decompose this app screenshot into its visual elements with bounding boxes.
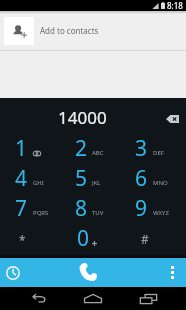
button[interactable]: Dial [26, 258, 158, 287]
button[interactable]: # [124, 223, 186, 253]
button[interactable]: 6 [124, 163, 186, 193]
button[interactable]: 1 [0, 133, 62, 163]
staticText: 14000 [58, 106, 107, 129]
staticText: WXYZ [153, 209, 169, 217]
staticText: GHI [33, 179, 44, 187]
staticText: 1 [15, 134, 28, 163]
button[interactable]: Add to contacts [0, 11, 186, 50]
button[interactable]: 3 [124, 133, 186, 163]
staticText: PQRS [33, 209, 49, 217]
staticText: 2 [75, 134, 88, 163]
staticText: 7 [15, 194, 28, 223]
staticText: 4 [15, 164, 28, 193]
staticText: 8 [75, 194, 88, 223]
button[interactable]: 7 [0, 193, 62, 223]
button[interactable]: * [0, 223, 62, 253]
button[interactable]: 9 [124, 193, 186, 223]
button[interactable]: Home [62, 287, 124, 310]
staticText: * [19, 232, 26, 248]
staticText: ABC [92, 149, 104, 157]
staticText: 5 [75, 164, 88, 193]
staticText: DEF [153, 149, 164, 157]
button[interactable]: 0 [62, 223, 124, 253]
staticText: 3 [135, 134, 148, 163]
staticText: JKL [92, 179, 101, 187]
button[interactable]: 8 [62, 193, 124, 223]
staticText: 6 [135, 164, 148, 193]
button[interactable]: Back [0, 287, 62, 310]
staticText: MNO [153, 179, 168, 187]
staticText: 9 [135, 194, 148, 223]
button[interactable]: Call history [0, 258, 26, 287]
button[interactable]: 2 [62, 133, 124, 163]
button[interactable]: 4 [0, 163, 62, 193]
staticText: # [141, 231, 149, 247]
staticText: 0 [77, 224, 90, 253]
button[interactable]: More options [158, 258, 186, 287]
staticText: TUV [92, 209, 104, 217]
staticText: 8:18 [167, 0, 183, 11]
button[interactable]: 5 [62, 163, 124, 193]
button[interactable]: Recents [124, 287, 186, 310]
button[interactable]: Backspace [156, 98, 186, 133]
staticText: Add to contacts [40, 25, 99, 36]
